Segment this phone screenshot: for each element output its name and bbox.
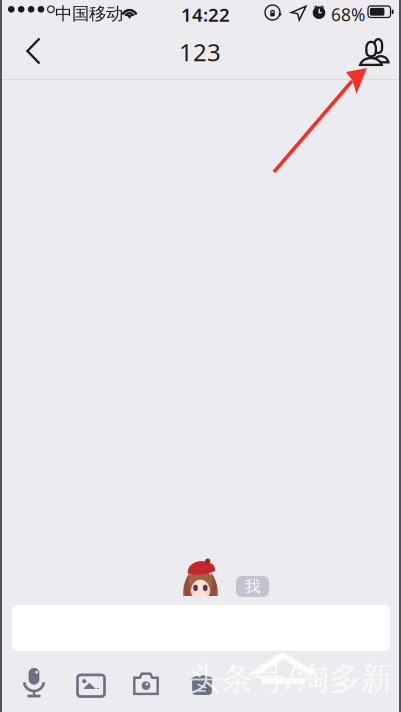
staticText: 123 bbox=[179, 36, 221, 68]
button[interactable]: Voice message bbox=[10, 659, 58, 707]
staticText: 68% bbox=[331, 3, 365, 26]
button[interactable]: Red packet bbox=[175, 659, 223, 707]
button[interactable]: Photos bbox=[65, 659, 113, 707]
button[interactable]: 123 bbox=[160, 38, 240, 66]
staticText: 我 bbox=[244, 577, 260, 596]
staticText: 头条号/淘多新 bbox=[189, 656, 393, 698]
button[interactable]: Back bbox=[5, 29, 54, 73]
staticText: 中国移动 bbox=[55, 3, 123, 24]
button[interactable]: Chat members bbox=[353, 30, 395, 74]
button[interactable]: Camera bbox=[120, 659, 168, 707]
staticText: 14:22 bbox=[181, 2, 230, 27]
